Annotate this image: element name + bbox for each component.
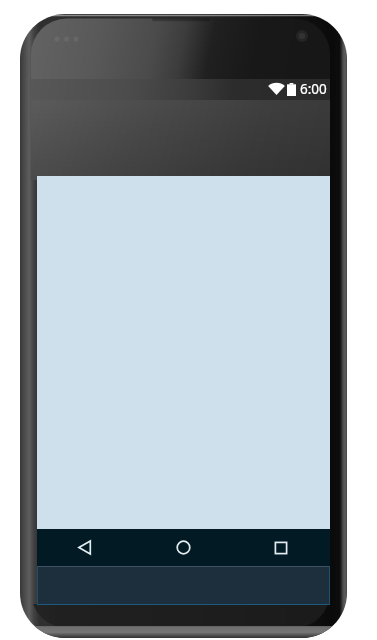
button[interactable]: Back	[37, 529, 134, 566]
staticText: 6:00	[300, 80, 327, 98]
button[interactable]: Home	[134, 529, 232, 566]
button[interactable]: Recent apps	[232, 529, 330, 566]
